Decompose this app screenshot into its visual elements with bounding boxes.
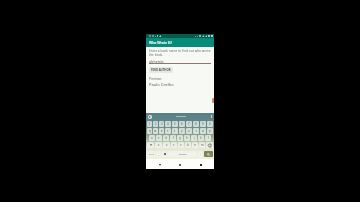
staticText: h [186, 136, 188, 140]
staticText: d [165, 136, 167, 140]
staticText: the book. [149, 53, 164, 57]
staticText: r [167, 129, 169, 133]
button[interactable]: . [198, 151, 203, 157]
button[interactable]: m [199, 142, 205, 148]
staticText: x [166, 143, 168, 147]
staticText: s [158, 136, 160, 140]
button[interactable]: 9 [200, 121, 206, 127]
staticText: English [179, 153, 187, 156]
button[interactable]: a [149, 135, 155, 141]
staticText: 5 [174, 122, 176, 126]
staticText: w [154, 129, 157, 133]
button[interactable]: d [163, 135, 169, 141]
staticText: . [200, 152, 201, 156]
button[interactable]: Keyboard settings [148, 115, 152, 119]
button[interactable] [206, 142, 213, 148]
staticText: 4 [167, 122, 169, 126]
staticText: t [174, 129, 176, 133]
button[interactable]: s [156, 135, 162, 141]
button[interactable]: 4 [165, 121, 171, 127]
staticText: 7 [188, 122, 190, 126]
button[interactable]: Recent apps [194, 160, 208, 169]
staticText: p [209, 129, 211, 133]
staticText: b [187, 143, 189, 147]
staticText: a [151, 136, 153, 140]
staticText: alchemis [149, 59, 164, 64]
button[interactable]: 3 [159, 121, 164, 127]
staticText: f [173, 136, 174, 140]
button[interactable]: v [178, 142, 184, 148]
staticText: g [179, 136, 181, 140]
button[interactable]: o [200, 128, 206, 134]
button[interactable]: Search [204, 151, 213, 157]
staticText: Premise: [149, 77, 162, 81]
staticText: FIND AUTHOR [151, 68, 171, 72]
staticText: 8 [195, 122, 197, 126]
button[interactable]: n [192, 142, 198, 148]
button[interactable]: g [177, 135, 183, 141]
button[interactable]: u [186, 128, 192, 134]
button[interactable]: t [172, 128, 178, 134]
button[interactable]: c [171, 142, 177, 148]
staticText: ?123 [149, 153, 154, 156]
staticText: u [188, 129, 190, 133]
button[interactable]: k [198, 135, 204, 141]
button[interactable]: FIND AUTHOR [149, 67, 173, 73]
staticText: i [196, 129, 197, 133]
button[interactable]: l [205, 135, 211, 141]
staticText: , [158, 152, 159, 156]
staticText: n [194, 143, 196, 147]
staticText: l [208, 136, 209, 140]
button[interactable]: 1 [147, 121, 152, 127]
staticText: 9 [202, 122, 204, 126]
button[interactable]: 6 [179, 121, 185, 127]
staticText: o [202, 129, 204, 133]
button[interactable]: English [168, 151, 197, 157]
staticText: y [181, 129, 183, 133]
button[interactable] [162, 151, 167, 157]
button[interactable]: Home [173, 160, 187, 169]
staticText: m [201, 143, 204, 147]
button[interactable]: f [170, 135, 176, 141]
staticText: e [161, 129, 163, 133]
staticText: q [149, 129, 151, 133]
button[interactable]: h [184, 135, 190, 141]
staticText: k [200, 136, 202, 140]
staticText: 1 [149, 122, 151, 126]
button[interactable]: 0 [207, 121, 213, 127]
button[interactable]: x [163, 142, 170, 148]
button[interactable]: b [185, 142, 191, 148]
staticText: v [180, 143, 182, 147]
button[interactable]: y [179, 128, 185, 134]
button[interactable]: z [155, 142, 162, 148]
staticText: Paulo Coelho [149, 82, 174, 87]
button[interactable]: 2 [153, 121, 158, 127]
button[interactable]: i [193, 128, 199, 134]
button[interactable]: 7 [186, 121, 192, 127]
button[interactable]: , [156, 151, 161, 157]
button[interactable]: Back [153, 160, 167, 169]
button[interactable]: q [147, 128, 152, 134]
button[interactable]: 5 [172, 121, 178, 127]
staticText: z [158, 143, 160, 147]
button[interactable]: ?123 [147, 151, 155, 157]
staticText: j [194, 136, 195, 140]
button[interactable]: e [159, 128, 164, 134]
staticText: Enter a book name to find out who wrote [149, 49, 211, 53]
button[interactable]: w [153, 128, 158, 134]
staticText: 2 [155, 122, 157, 126]
staticText: 6 [181, 122, 183, 126]
staticText: Who Wrote It? [149, 40, 173, 45]
staticText: c [173, 143, 175, 147]
button[interactable]: r [165, 128, 171, 134]
staticText: 3 [161, 122, 163, 126]
button[interactable]: p [207, 128, 213, 134]
staticText: 0 [209, 122, 211, 126]
button[interactable]: 8 [193, 121, 199, 127]
button[interactable] [147, 142, 154, 148]
button[interactable]: j [191, 135, 197, 141]
